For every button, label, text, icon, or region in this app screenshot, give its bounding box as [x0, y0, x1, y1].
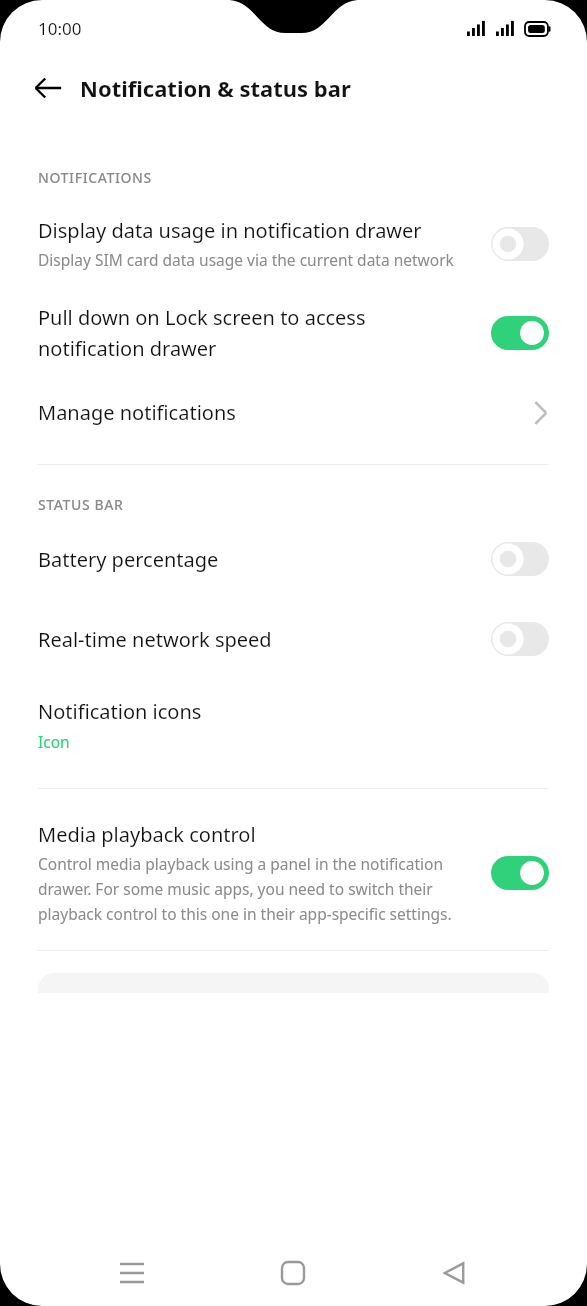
staticText: Media playback control [38, 821, 256, 848]
button[interactable]: Media playback control [0, 821, 587, 924]
button[interactable]: Display data usage in notification drawe… [0, 217, 587, 270]
staticText: Icon [38, 731, 70, 752]
staticText: Battery percentage [38, 546, 219, 573]
button[interactable]: Notification icons [0, 698, 587, 752]
staticText: STATUS BAR [38, 495, 124, 514]
button[interactable]: Home [265, 1245, 321, 1301]
button[interactable]: Real-time network speed [0, 622, 587, 656]
button[interactable]: Manage notifications [0, 399, 587, 426]
button[interactable]: Recent apps [104, 1245, 160, 1301]
button[interactable]: Toggle off [491, 622, 549, 656]
staticText: 10:00 [38, 17, 82, 40]
button[interactable]: Back [426, 1245, 482, 1301]
button[interactable]: Toggle on [491, 856, 549, 890]
button[interactable]: Pull down on Lock screen to access notif… [0, 304, 587, 361]
staticText: Display SIM card data usage via the curr… [38, 249, 454, 270]
staticText: Manage notifications [38, 399, 533, 426]
staticText: Display data usage in notification drawe… [38, 217, 422, 244]
staticText: Notification icons [38, 698, 202, 725]
button[interactable]: Toggle on [491, 316, 549, 350]
button[interactable]: Battery percentage [0, 542, 587, 576]
staticText: Real-time network speed [38, 626, 272, 653]
button[interactable]: Back [24, 64, 72, 112]
button[interactable]: Toggle off [491, 227, 549, 261]
staticText: Notification & status bar [80, 73, 351, 103]
button[interactable]: Toggle off [491, 542, 549, 576]
staticText: Pull down on Lock screen to access notif… [38, 304, 467, 361]
staticText: Control media playback using a panel in … [38, 853, 467, 924]
staticText: NOTIFICATIONS [38, 168, 152, 187]
